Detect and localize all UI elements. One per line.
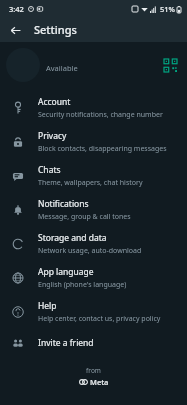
staticText: Help center, contact us, privacy policy xyxy=(38,314,161,324)
button[interactable]: Invite a friend xyxy=(0,329,187,356)
staticText: English (phone's language) xyxy=(38,280,127,290)
staticText: Notifications xyxy=(38,198,89,210)
staticText: Theme, wallpapers, chat history xyxy=(38,178,143,188)
staticText: Message, group & call tones xyxy=(38,212,131,222)
button[interactable]: Back xyxy=(4,19,26,41)
staticText: App language xyxy=(38,266,94,278)
button[interactable]: Help xyxy=(0,295,187,329)
button[interactable]: QR code xyxy=(159,54,181,76)
button[interactable]: Notifications xyxy=(0,193,187,227)
staticText: 51% xyxy=(160,4,175,14)
staticText: Storage and data xyxy=(38,232,107,244)
staticText: Settings xyxy=(34,22,77,37)
button[interactable]: Privacy xyxy=(0,125,187,159)
staticText: Invite a friend xyxy=(38,337,94,349)
button[interactable]: App language xyxy=(0,261,187,295)
staticText: 3:42 xyxy=(9,4,24,14)
staticText: from xyxy=(86,366,101,375)
button[interactable]: Chats xyxy=(0,159,187,193)
button[interactable]: Storage and data xyxy=(0,227,187,261)
staticText: Block contacts, disappearing messages xyxy=(38,144,167,154)
button[interactable]: Available xyxy=(0,42,187,88)
staticText: Network usage, auto-download xyxy=(38,246,142,256)
staticText: Chats xyxy=(38,164,61,176)
staticText: Help xyxy=(38,300,57,312)
staticText: Privacy xyxy=(38,130,67,142)
button[interactable]: Account xyxy=(0,91,187,125)
staticText: Meta xyxy=(90,377,109,387)
staticText: Available xyxy=(46,63,78,73)
staticText: Security notifications, change number xyxy=(38,110,163,120)
staticText: Account xyxy=(38,96,71,108)
